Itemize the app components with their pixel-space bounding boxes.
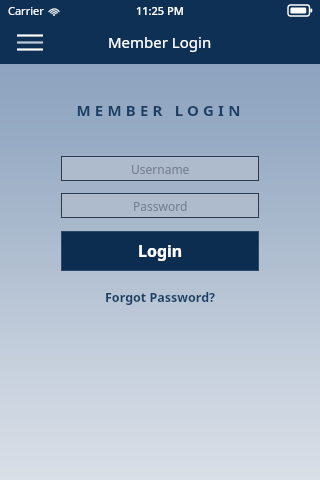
button[interactable]: Password	[61, 193, 259, 218]
staticText: Member Login	[108, 32, 212, 52]
staticText: 11:25 PM	[136, 3, 184, 18]
staticText: Forgot Password?	[105, 289, 216, 306]
staticText: Password	[133, 198, 188, 214]
button[interactable]: Open navigation menu	[10, 22, 50, 62]
staticText: Login	[138, 240, 183, 262]
button[interactable]: Login	[61, 231, 259, 271]
button[interactable]: Username	[61, 156, 259, 181]
button[interactable]: Forgot Password?	[99, 285, 222, 310]
staticText: Carrier	[8, 3, 44, 18]
staticText: MEMBER LOGIN	[76, 100, 245, 120]
staticText: Username	[131, 161, 190, 177]
